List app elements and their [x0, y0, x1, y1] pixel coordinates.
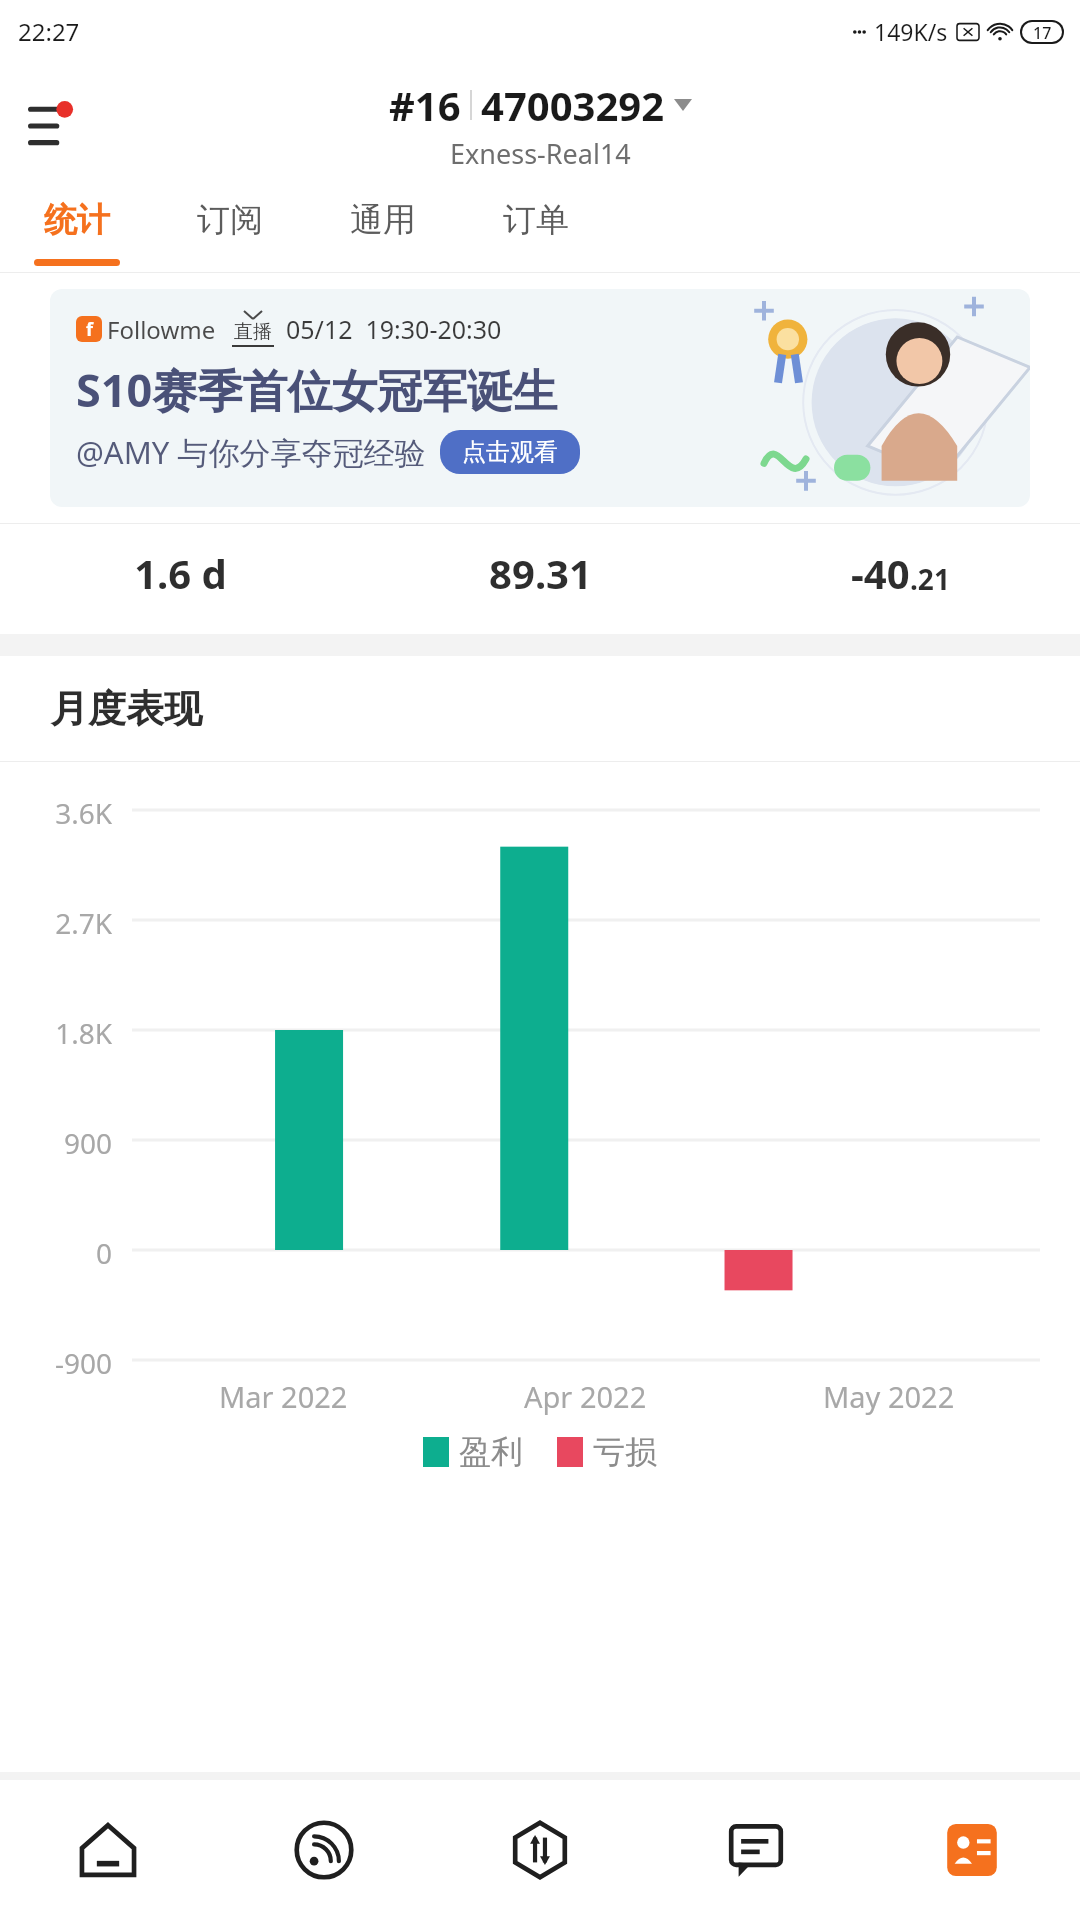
- staticText: @AMY 与你分享夺冠经验: [76, 431, 426, 473]
- staticText: f: [86, 317, 93, 342]
- staticText: .21: [910, 560, 950, 598]
- button[interactable]: #16: [389, 78, 692, 172]
- button[interactable]: 点击观看: [440, 430, 580, 474]
- staticText: S10赛季首位女冠军诞生: [76, 359, 558, 420]
- staticText: 17: [1033, 22, 1052, 42]
- staticText: 亏损: [593, 1432, 657, 1472]
- staticText: 47003292: [481, 78, 665, 132]
- staticText: -900: [54, 1344, 112, 1382]
- staticText: 直播: [234, 320, 272, 344]
- staticText: 通用: [350, 199, 416, 241]
- staticText: 22:27: [18, 15, 80, 48]
- button[interactable]: f: [50, 289, 1030, 507]
- button[interactable]: Menu: [24, 94, 86, 156]
- button[interactable]: Trade: [432, 1780, 648, 1920]
- staticText: Followme: [107, 313, 216, 346]
- staticText: 订阅: [197, 199, 263, 241]
- staticText: 89.31: [489, 546, 592, 600]
- staticText: #16: [389, 78, 461, 132]
- staticText: 盈利: [459, 1432, 523, 1472]
- button[interactable]: 订单: [459, 187, 612, 272]
- staticText: Apr 2022: [524, 1377, 647, 1416]
- button[interactable]: 统计: [0, 187, 153, 272]
- button[interactable]: Home: [0, 1780, 216, 1920]
- staticText: Exness-Real14: [450, 135, 631, 172]
- staticText: Mar 2022: [219, 1377, 348, 1416]
- button[interactable]: Profile: [864, 1780, 1080, 1920]
- staticText: 点击观看: [462, 437, 558, 467]
- staticText: 05/12 19:30-20:30: [286, 312, 502, 346]
- staticText: 1.8K: [55, 1014, 112, 1052]
- button[interactable]: 通用: [306, 187, 459, 272]
- staticText: 149K/s: [874, 16, 948, 47]
- staticText: 1.6 d: [134, 546, 227, 600]
- staticText: 统计: [44, 199, 110, 241]
- staticText: 3.6K: [55, 794, 112, 832]
- button[interactable]: Messages: [648, 1780, 864, 1920]
- staticText: 订单: [503, 199, 569, 241]
- button[interactable]: 订阅: [153, 187, 306, 272]
- staticText: May 2022: [823, 1377, 955, 1416]
- staticText: 月度表现: [50, 685, 202, 733]
- staticText: 2.7K: [55, 904, 112, 942]
- staticText: 0: [95, 1234, 112, 1272]
- staticText: 900: [63, 1124, 112, 1162]
- staticText: -40: [851, 546, 910, 600]
- button[interactable]: Signals: [216, 1780, 432, 1920]
